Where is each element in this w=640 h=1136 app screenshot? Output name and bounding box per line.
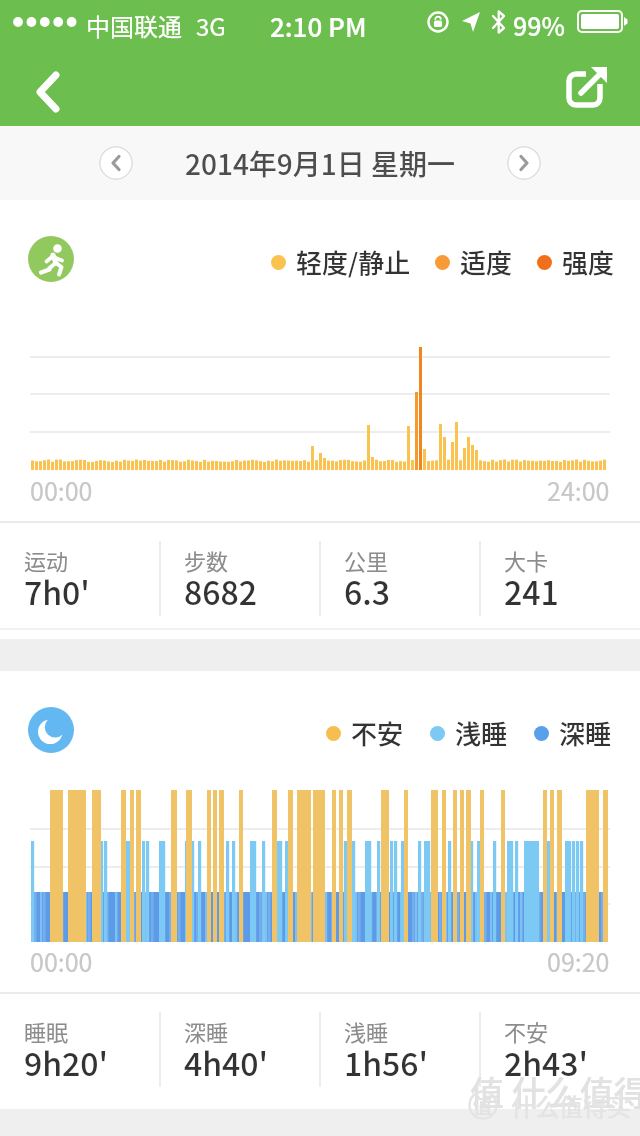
staticText: 4h40' [184,1039,269,1085]
staticText: 99% [513,7,565,43]
staticText: 什么值得买 [511,1088,631,1123]
staticText: 浅睡 [344,1015,389,1047]
staticText: 241 [504,568,559,614]
staticText: 不安 [351,714,404,752]
staticText: 2h43' [504,1039,589,1085]
staticText: 9h20' [24,1039,109,1085]
staticText: 3G [196,8,226,43]
staticText: 1h56' [344,1039,429,1085]
staticText: 不安 [504,1015,549,1047]
staticText: 值 什么值得买 [470,1067,640,1116]
button[interactable] [99,146,133,180]
staticText: 睡眠 [24,1015,69,1047]
staticText: 09:20 [547,943,610,979]
staticText: 7h0' [24,568,90,614]
staticText: 运动 [24,544,69,576]
staticText: 轻度/静止 [296,243,411,281]
staticText: 浅睡 [455,714,508,752]
staticText: 2:10 PM [270,7,367,45]
button[interactable] [507,146,541,180]
staticText: 步数 [184,544,229,576]
staticText: 深睡 [184,1015,229,1047]
staticText: 中国联通 [86,8,182,43]
staticText: 00:00 [30,472,93,508]
staticText: 强度 [562,243,615,281]
staticText: 适度 [460,243,513,281]
staticText: 值 [473,1091,493,1119]
staticText: 24:00 [547,472,610,508]
staticText: 公里 [344,544,389,576]
staticText: 2014年9月1日 星期一 [185,143,456,184]
button[interactable] [558,58,620,114]
staticText: 深睡 [559,714,612,752]
staticText: 大卡 [504,544,549,576]
staticText: 8682 [184,568,257,614]
staticText: 6.3 [344,568,391,614]
staticText: 00:00 [30,943,93,979]
button[interactable] [20,64,76,120]
